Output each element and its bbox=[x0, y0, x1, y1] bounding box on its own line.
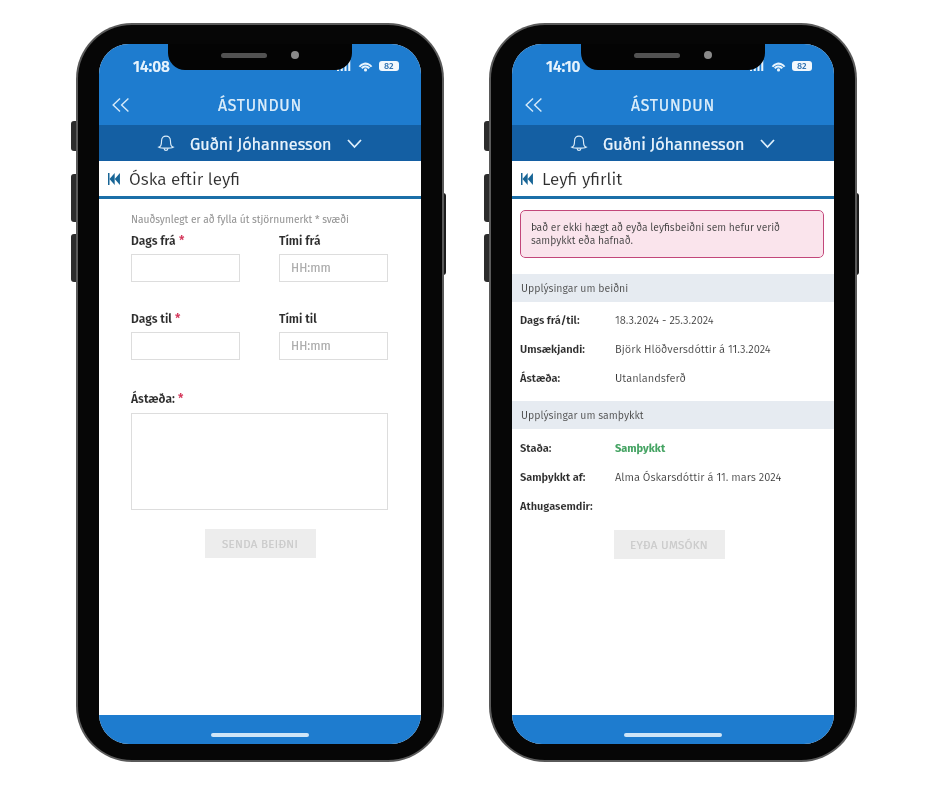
staticText: Tími til bbox=[279, 312, 317, 326]
button[interactable]: Guðni Jóhannesson bbox=[99, 125, 421, 161]
staticText: Óska eftir leyfi bbox=[129, 169, 241, 189]
staticText: Dags frá bbox=[131, 234, 176, 248]
button[interactable]: Back bbox=[519, 90, 549, 120]
button[interactable]: HH:mm bbox=[279, 254, 388, 282]
staticText: 18.3.2024 - 25.3.2024 bbox=[615, 314, 714, 327]
staticText: Upplýsingar um samþykkt bbox=[521, 409, 644, 422]
staticText: Nauðsynlegt er að fylla út stjörnumerkt … bbox=[131, 213, 349, 225]
staticText: Ástæða: bbox=[131, 392, 175, 406]
staticText: 14:10 bbox=[546, 58, 581, 77]
staticText: Samþykkt af: bbox=[520, 471, 615, 484]
staticText: ÁSTUNDUN bbox=[218, 96, 303, 115]
staticText: * bbox=[178, 392, 184, 406]
staticText: HH:mm bbox=[291, 261, 331, 275]
staticText: Samþykkt bbox=[615, 442, 666, 455]
button[interactable]: Guðni Jóhannesson bbox=[512, 125, 834, 161]
button[interactable]: Back to list bbox=[512, 161, 834, 196]
button[interactable] bbox=[131, 332, 240, 360]
staticText: Umsækjandi: bbox=[520, 343, 615, 356]
staticText: Dags frá/til: bbox=[520, 314, 615, 327]
staticText: Það er ekki hægt að eyða leyfisbeiðni se… bbox=[531, 221, 810, 247]
staticText: 82 bbox=[797, 61, 807, 71]
staticText: Ástæða: bbox=[520, 372, 615, 385]
staticText: EYÐA UMSÓKN bbox=[630, 538, 709, 552]
other: Back to list bbox=[520, 172, 533, 186]
button[interactable]: Back to list bbox=[99, 161, 421, 196]
button[interactable]: Back bbox=[106, 90, 136, 120]
staticText: Leyfi yfirlit bbox=[542, 169, 623, 189]
other: Back to list bbox=[107, 172, 120, 186]
staticText: Guðni Jóhannesson bbox=[603, 135, 745, 154]
staticText: Björk Hlöðversdóttir á 11.3.2024 bbox=[615, 343, 771, 356]
staticText: Athugasemdir: bbox=[520, 500, 615, 513]
staticText: ÁSTUNDUN bbox=[631, 96, 716, 115]
staticText: * bbox=[179, 234, 185, 248]
staticText: Guðni Jóhannesson bbox=[190, 135, 332, 154]
staticText: 14:08 bbox=[133, 58, 170, 77]
staticText: Alma Óskarsdóttir á 11. mars 2024 bbox=[615, 471, 782, 484]
button[interactable] bbox=[131, 254, 240, 282]
staticText: * bbox=[175, 312, 181, 326]
staticText: Utanlandsferð bbox=[615, 372, 686, 385]
staticText: Staða: bbox=[520, 442, 615, 455]
staticText: Dags til bbox=[131, 312, 172, 326]
staticText: Tími frá bbox=[279, 234, 321, 248]
button[interactable]: HH:mm bbox=[279, 332, 388, 360]
staticText: HH:mm bbox=[291, 339, 331, 353]
staticText: 82 bbox=[384, 61, 394, 71]
button[interactable] bbox=[131, 413, 388, 510]
staticText: SENDA BEIÐNI bbox=[222, 537, 299, 551]
button[interactable]: SENDA BEIÐNI bbox=[205, 529, 316, 558]
button[interactable]: EYÐA UMSÓKN bbox=[614, 530, 725, 559]
staticText: Upplýsingar um beiðni bbox=[521, 282, 629, 295]
